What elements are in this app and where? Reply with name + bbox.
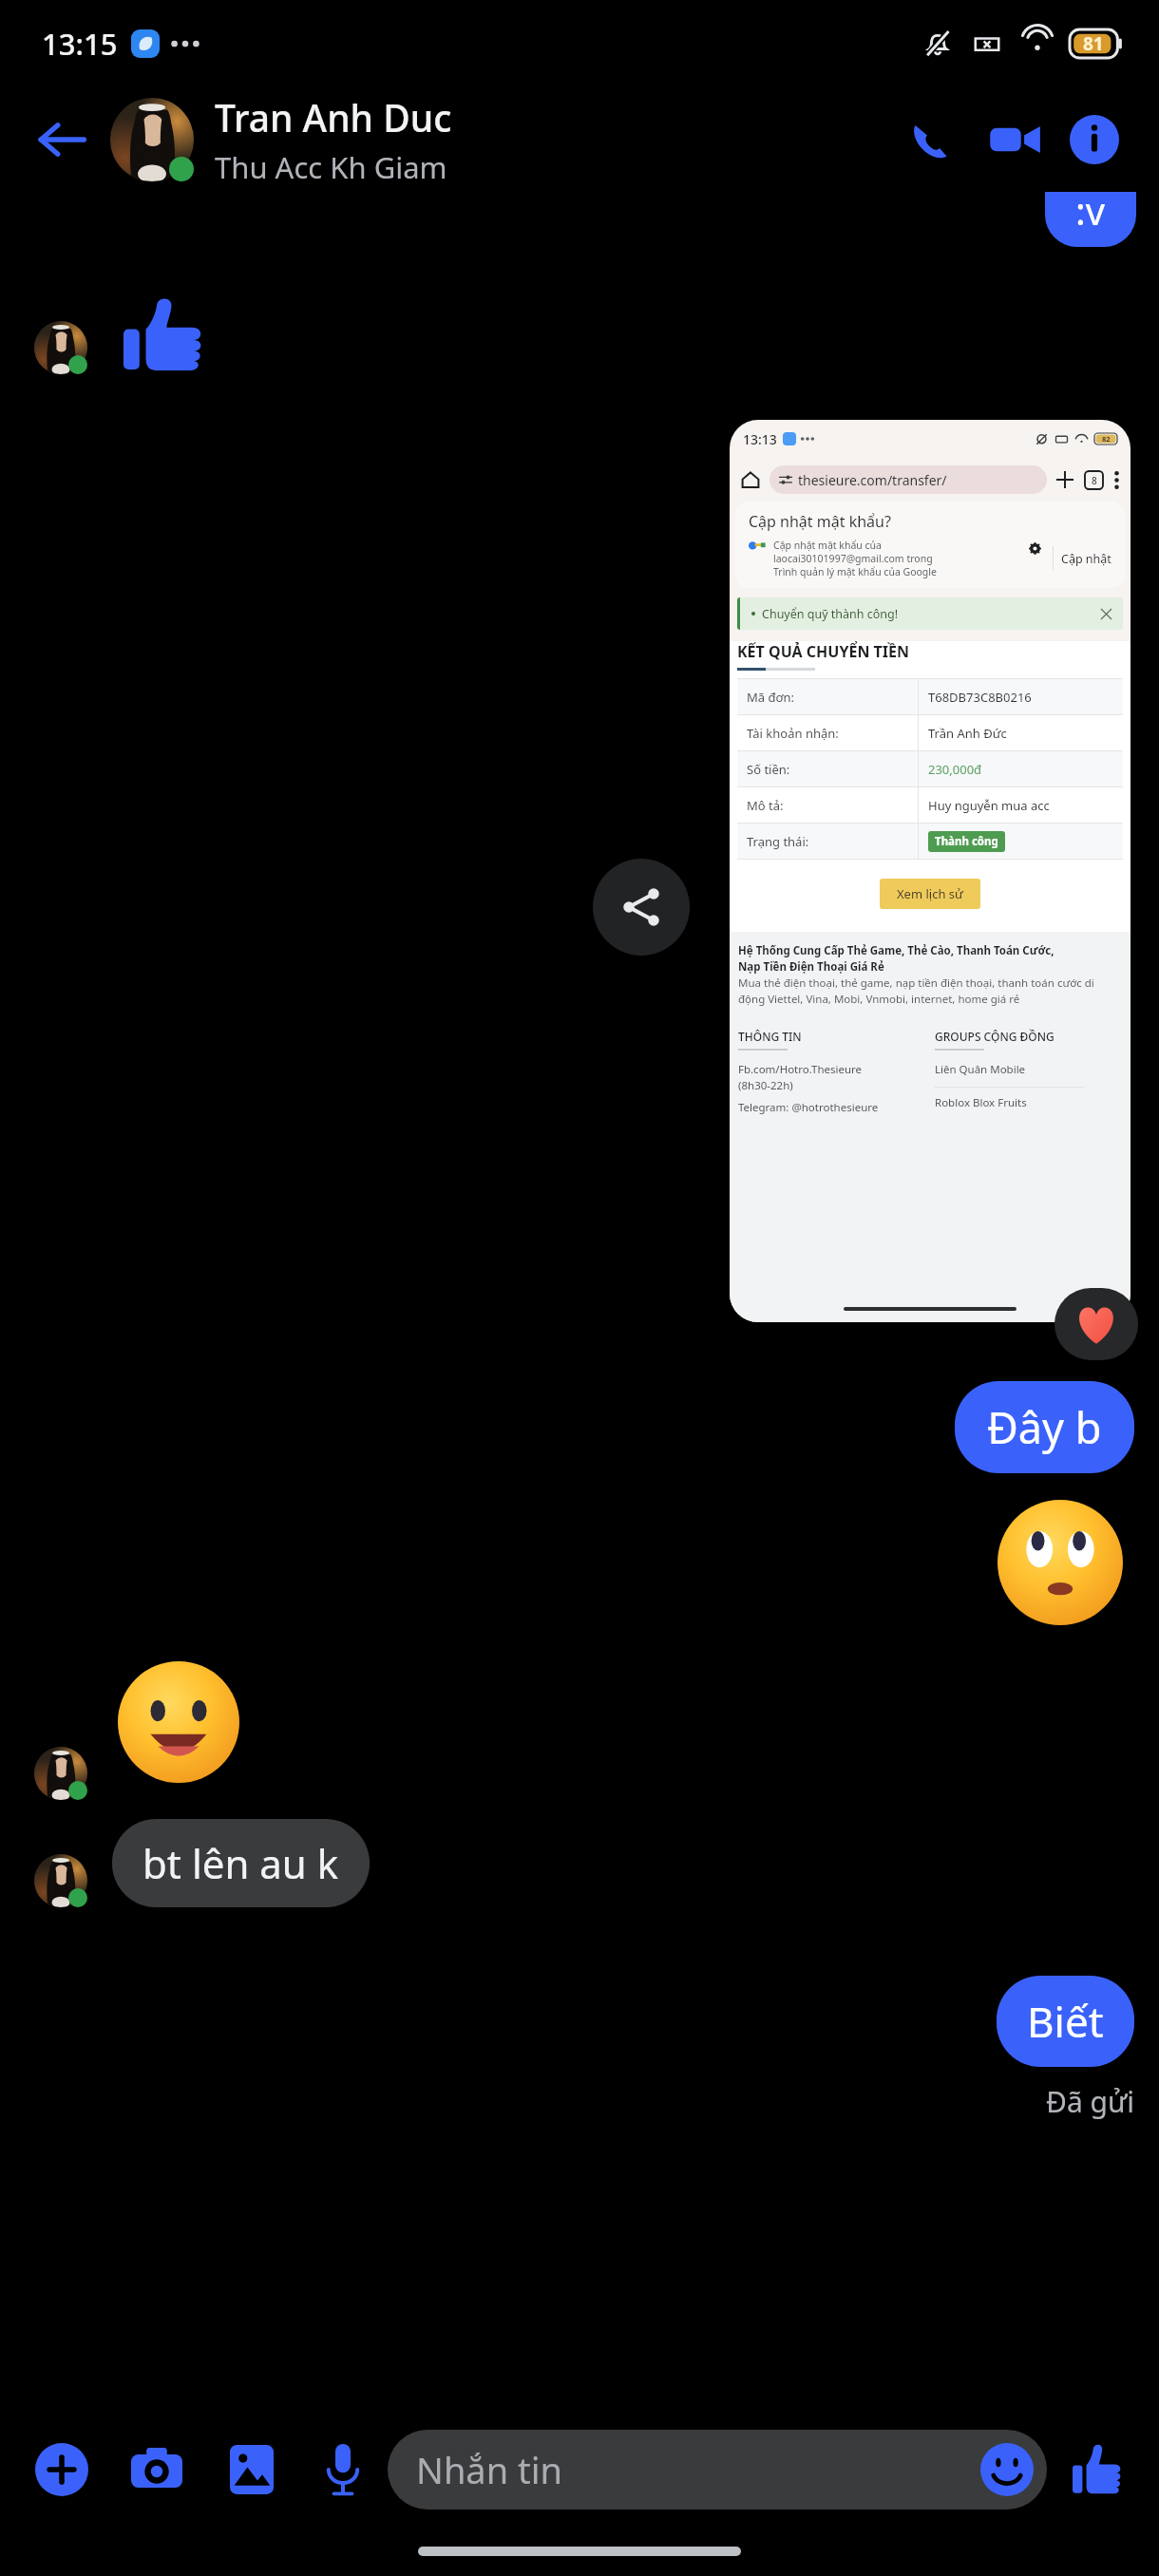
staticText: Telegram: @hotrothesieure	[738, 1100, 879, 1115]
staticText: 8	[1092, 474, 1097, 487]
staticText: Cập nhật mật khẩu?	[749, 511, 891, 532]
button[interactable]: Smile emoji	[118, 1661, 239, 1783]
staticText: Liên Quân Mobile	[935, 1062, 1026, 1077]
button[interactable]: Camera	[122, 2434, 192, 2505]
staticText: Roblox Blox Fruits	[935, 1095, 1027, 1110]
staticText: :v	[1075, 192, 1106, 236]
button[interactable]: bt lên au k	[112, 1819, 370, 1907]
staticText: KẾT QUẢ CHUYỂN TIỀN	[737, 641, 909, 662]
button[interactable]: 13:13	[730, 420, 1130, 1322]
button[interactable]: Đây b	[955, 1381, 1134, 1473]
staticText: Mô tả:	[747, 797, 784, 814]
button[interactable]: Back	[27, 104, 97, 175]
button[interactable]: Xem lịch sử	[880, 879, 980, 909]
staticText: Fb.com/Hotro.Thesieure (8h30-22h)	[738, 1062, 863, 1092]
staticText: T68DB73C8B0216	[928, 689, 1032, 706]
staticText: Xem lịch sử	[897, 885, 963, 902]
staticText: Huy nguyễn mua acc	[928, 797, 1050, 814]
button[interactable]	[1054, 1288, 1138, 1360]
staticText: Đã gửi	[1046, 2082, 1134, 2121]
button[interactable]: Conversation information	[1056, 102, 1132, 178]
staticText: Thu Acc Kh Giam	[215, 147, 447, 187]
staticText: THÔNG TIN	[738, 1029, 802, 1044]
staticText: Trạng thái:	[747, 833, 809, 850]
staticText: Biết	[1027, 1993, 1104, 2050]
staticText: GROUPS CỘNG ĐỒNG	[935, 1029, 1054, 1044]
button[interactable]: Gallery	[217, 2434, 287, 2505]
button[interactable]: Nhắn tin	[388, 2430, 1047, 2510]
staticText: Chuyển quỹ thành công!	[762, 606, 899, 622]
staticText: 81	[1083, 31, 1104, 56]
staticText: Mã đơn:	[747, 689, 795, 706]
staticText: Nhắn tin	[416, 2445, 980, 2494]
button[interactable]: Share	[593, 859, 690, 956]
staticText: Trần Anh Đức	[928, 725, 1007, 742]
button[interactable]: Rolling eyes emoji	[997, 1500, 1123, 1625]
button[interactable]: Thumbs up sticker	[123, 296, 203, 374]
button[interactable]: Video call	[973, 98, 1056, 181]
staticText: Đây b	[987, 1398, 1102, 1456]
staticText: bt lên au k	[142, 1836, 339, 1890]
button[interactable]: Voice call	[889, 98, 973, 181]
staticText: Hệ Thống Cung Cấp Thẻ Game, Thẻ Cào, Tha…	[738, 943, 1054, 974]
button[interactable]: More options	[27, 2434, 97, 2505]
staticText: Số tiền:	[747, 761, 790, 778]
button[interactable]: Send like	[1062, 2434, 1132, 2505]
button[interactable]: Choose emoji	[980, 2443, 1034, 2496]
button[interactable]: :v	[1045, 192, 1136, 247]
staticText: 13:13	[743, 430, 777, 448]
staticText: Cập nhật	[1061, 551, 1111, 567]
button[interactable]: Tran Anh Duc	[110, 92, 889, 187]
staticText: thesieure.com/transfer/	[798, 471, 947, 489]
staticText: Cập nhật mật khẩu của laocai30101997@gma…	[773, 539, 1025, 578]
staticText: Tài khoản nhận:	[747, 725, 839, 742]
staticText: 230,000đ	[928, 761, 982, 778]
staticText: 82	[1102, 434, 1111, 444]
staticText: Thành công	[935, 834, 998, 849]
button[interactable]: Biết	[997, 1976, 1134, 2067]
staticText: Tran Anh Duc	[215, 92, 452, 142]
staticText: Mua thẻ điện thoại, thẻ game, nạp tiền đ…	[738, 975, 1122, 1006]
staticText: 13:15	[42, 24, 118, 64]
button[interactable]: Voice message	[312, 2438, 374, 2501]
